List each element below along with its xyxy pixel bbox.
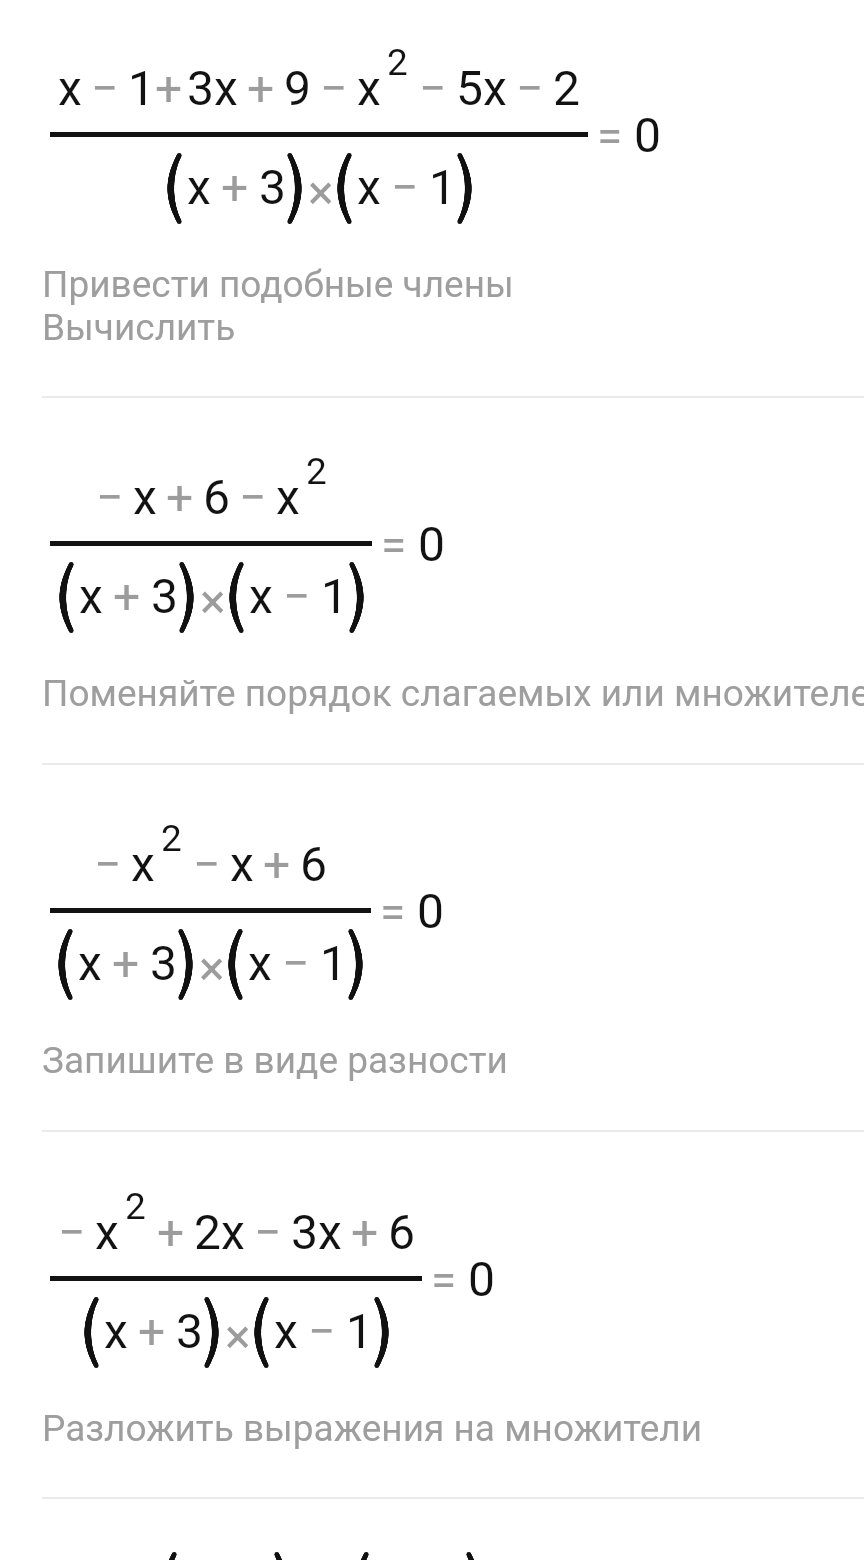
staticText: 6 <box>388 1204 415 1260</box>
staticText: − <box>308 1303 336 1359</box>
staticText: 3 <box>151 568 178 624</box>
staticText: 2x <box>194 1204 245 1260</box>
staticText: 3x <box>291 1204 342 1260</box>
staticText: x <box>58 60 82 116</box>
staticText: x <box>131 836 155 892</box>
button[interactable]: Запишите в виде разности <box>0 1039 864 1082</box>
staticText: x <box>104 1303 128 1359</box>
staticText: 0 <box>417 883 444 939</box>
staticText: x <box>133 469 157 525</box>
staticText: 0 <box>634 107 661 163</box>
staticText: Привести подобные члены <box>42 263 514 306</box>
staticText: x <box>357 159 381 215</box>
staticText: x <box>187 159 211 215</box>
staticText: − <box>320 60 348 116</box>
staticText: = <box>597 109 623 163</box>
button[interactable]: Вычислить <box>0 306 864 349</box>
staticText: = <box>380 885 406 939</box>
staticText: 1 <box>429 159 456 215</box>
staticText: = <box>431 1253 457 1307</box>
staticText: − <box>516 60 544 116</box>
staticText: + <box>166 469 194 525</box>
staticText: = <box>381 518 407 572</box>
staticText: − <box>282 935 310 991</box>
staticText: 1 <box>321 568 348 624</box>
staticText: − <box>96 469 124 525</box>
staticText: Разложить выражения на множители <box>42 1407 703 1450</box>
staticText: − <box>193 836 221 892</box>
staticText: 2 <box>161 817 182 860</box>
staticText: 1 <box>128 60 155 116</box>
staticText: x <box>230 836 254 892</box>
staticText: − <box>94 836 122 892</box>
staticText: 2 <box>553 60 580 116</box>
staticText: 3x <box>187 60 238 116</box>
staticText: × <box>200 573 226 629</box>
staticText: 3 <box>259 159 286 215</box>
staticText: − <box>58 1204 86 1260</box>
staticText: − <box>419 60 447 116</box>
staticText: x <box>78 935 102 991</box>
staticText: x <box>357 60 381 116</box>
staticText: 3 <box>176 1303 203 1359</box>
staticText: + <box>247 60 275 116</box>
staticText: + <box>155 60 183 116</box>
staticText: × <box>199 940 225 996</box>
staticText: 2 <box>387 41 408 84</box>
staticText: Вычислить <box>42 306 236 349</box>
staticText: Запишите в виде разности <box>42 1039 508 1082</box>
staticText: 6 <box>300 836 327 892</box>
staticText: x <box>249 568 273 624</box>
staticText: 1 <box>346 1303 373 1359</box>
staticText: + <box>221 159 249 215</box>
staticText: 2 <box>125 1185 146 1228</box>
staticText: x <box>95 1204 119 1260</box>
staticText: 3 <box>150 935 177 991</box>
button[interactable]: Привести подобные члены <box>0 263 864 306</box>
staticText: − <box>391 159 419 215</box>
staticText: − <box>283 568 311 624</box>
staticText: x <box>274 1303 298 1359</box>
staticText: × <box>308 164 334 220</box>
staticText: x <box>79 568 103 624</box>
staticText: + <box>263 836 291 892</box>
staticText: + <box>112 935 140 991</box>
staticText: + <box>157 1204 185 1260</box>
staticText: × <box>225 1308 251 1364</box>
staticText: 6 <box>203 469 230 525</box>
staticText: 0 <box>418 516 445 572</box>
staticText: + <box>113 568 141 624</box>
staticText: + <box>138 1303 166 1359</box>
staticText: 2 <box>306 450 327 493</box>
staticText: x <box>276 469 300 525</box>
staticText: x <box>248 935 272 991</box>
button[interactable]: Разложить выражения на множители <box>0 1407 864 1450</box>
staticText: 0 <box>468 1251 495 1307</box>
staticText: + <box>351 1204 379 1260</box>
staticText: 5x <box>456 60 507 116</box>
staticText: 9 <box>284 60 311 116</box>
staticText: Поменяйте порядок слагаемых или множител… <box>42 672 864 715</box>
staticText: − <box>91 60 119 116</box>
button[interactable]: Поменяйте порядок слагаемых или множител… <box>0 672 864 715</box>
staticText: − <box>239 469 267 525</box>
staticText: 1 <box>320 935 347 991</box>
staticText: − <box>254 1204 282 1260</box>
